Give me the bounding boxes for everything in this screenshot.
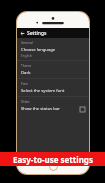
other: Home [49,162,58,171]
staticText: Select the system font [21,88,65,94]
staticText: General [21,41,33,45]
staticText: Easy-to-use settings [13,154,93,165]
button[interactable]: Choose language [17,46,89,60]
staticText: Font [21,82,28,86]
button[interactable]: Back [17,28,27,38]
other: Toggle show status bar [80,107,85,112]
staticText: Choose language [21,47,56,53]
staticText: English [21,54,32,58]
staticText: Other [21,100,30,104]
staticText: Show the status bar [21,106,60,112]
staticText: Settings [27,30,47,37]
button[interactable]: Select the system font [17,87,89,96]
staticText: Dark [21,70,31,76]
staticText: Theme [21,64,32,68]
button[interactable]: Dark [17,69,89,78]
button[interactable]: Show the status bar [17,105,89,114]
